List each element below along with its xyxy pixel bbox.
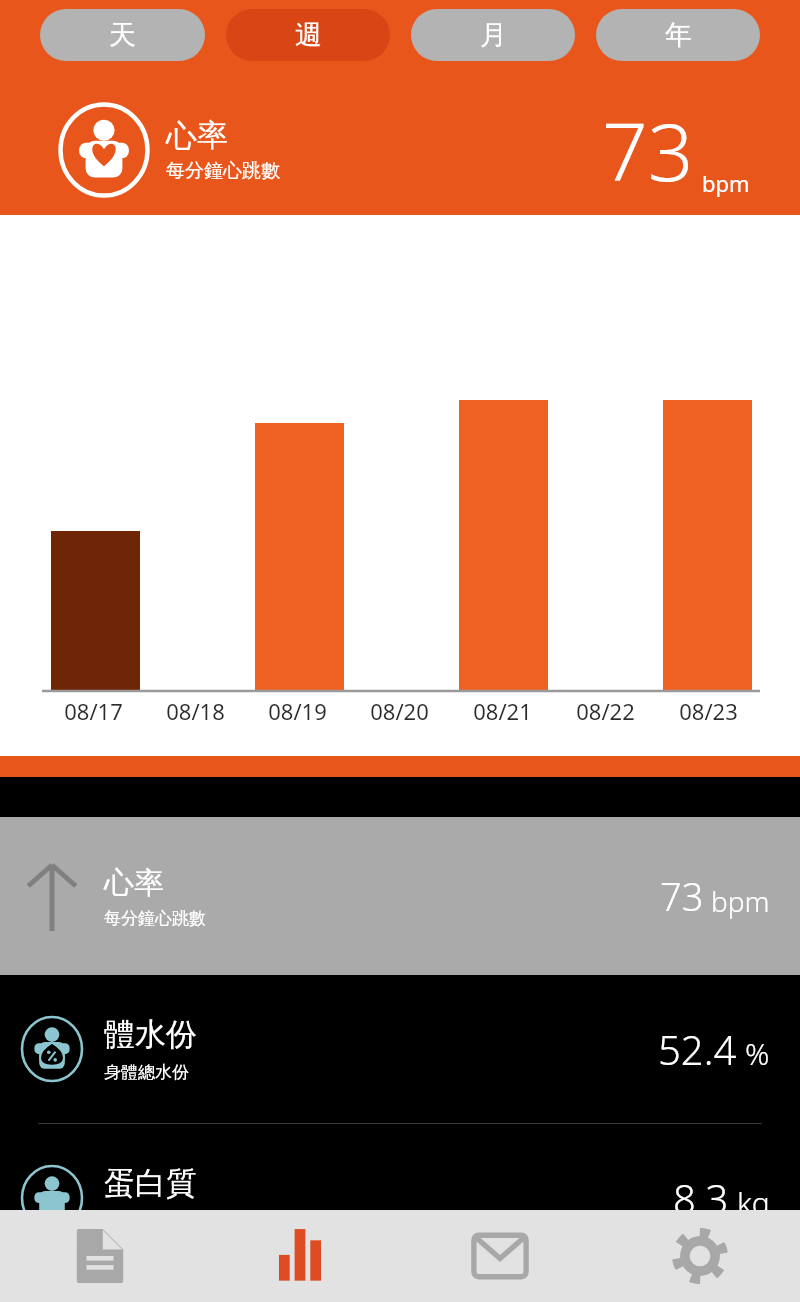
staticText: bpm — [702, 168, 750, 198]
staticText: 體水份 — [104, 1015, 197, 1054]
staticText: 心率 — [104, 864, 164, 902]
other: Trend up — [25, 861, 79, 931]
staticText: 73 — [602, 95, 694, 204]
button[interactable]: 蛋白質 — [0, 1124, 800, 1272]
staticText: 73 — [660, 870, 704, 922]
staticText: kg — [737, 1182, 770, 1223]
staticText: 每分鐘心跳數 — [166, 159, 280, 183]
button[interactable]: Reports — [0, 1210, 200, 1302]
button[interactable]: 體水份 — [0, 975, 800, 1123]
staticText: 08/21 — [473, 696, 532, 726]
button[interactable]: Trend up — [0, 817, 800, 975]
button[interactable]: Charts — [200, 1210, 400, 1302]
other: 體水份 — [20, 1015, 84, 1083]
staticText: 08/17 — [64, 696, 123, 726]
staticText: bpm — [711, 882, 770, 920]
button[interactable]: Messages — [400, 1210, 600, 1302]
staticText: 身體總水份 — [104, 1062, 189, 1083]
staticText: 08/22 — [576, 696, 635, 726]
button[interactable]: 週 — [226, 9, 390, 61]
staticText: 每分鐘心跳數 — [104, 908, 206, 929]
button[interactable]: 月 — [411, 9, 575, 61]
other: 蛋白質 — [20, 1164, 84, 1232]
other: Heart rate — [58, 102, 150, 198]
staticText: 08/23 — [679, 696, 738, 726]
staticText: 52.4 — [658, 1022, 737, 1076]
button[interactable]: 年 — [596, 9, 760, 61]
staticText: % — [745, 1033, 770, 1074]
staticText: 08/20 — [370, 696, 429, 726]
staticText: 心率 — [166, 116, 228, 155]
staticText: 天 — [109, 18, 136, 52]
staticText: 蛋白質 — [104, 1164, 197, 1203]
button[interactable]: 天 — [40, 9, 205, 61]
staticText: 08/18 — [166, 696, 225, 726]
staticText: 月 — [480, 18, 507, 52]
staticText: 8.3 — [673, 1171, 729, 1225]
staticText: 年 — [665, 18, 692, 52]
staticText: 08/19 — [268, 696, 327, 726]
staticText: 週 — [295, 18, 322, 52]
button[interactable]: Settings — [600, 1210, 800, 1302]
